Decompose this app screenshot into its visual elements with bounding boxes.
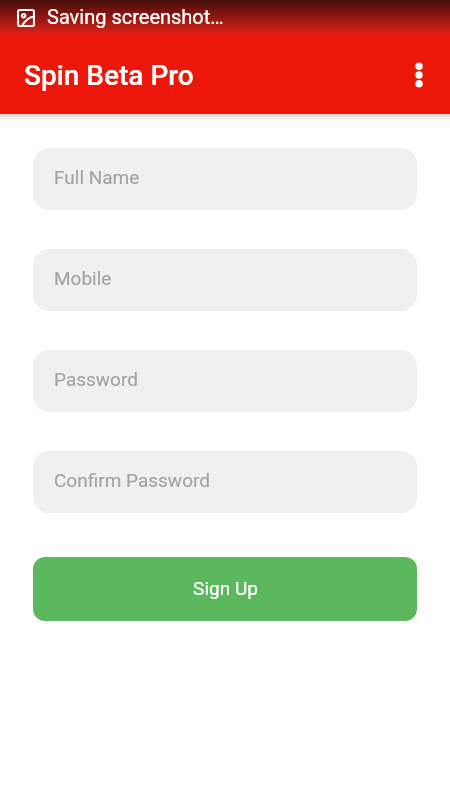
button[interactable]: More options	[400, 36, 450, 114]
staticText: Password	[54, 368, 138, 390]
button[interactable]: Sign Up	[33, 557, 417, 621]
button[interactable]: Password	[33, 350, 417, 412]
button[interactable]: Mobile	[33, 249, 417, 311]
staticText: Sign Up	[193, 577, 258, 599]
button[interactable]: Full Name	[33, 148, 417, 210]
other: Screenshot saved	[17, 9, 35, 27]
button[interactable]: Confirm Password	[33, 451, 417, 513]
staticText: Confirm Password	[54, 469, 210, 491]
staticText: Mobile	[54, 267, 112, 289]
staticText: Spin Beta Pro	[24, 59, 194, 92]
staticText: Saving screenshot…	[47, 5, 224, 28]
staticText: Full Name	[54, 166, 140, 188]
